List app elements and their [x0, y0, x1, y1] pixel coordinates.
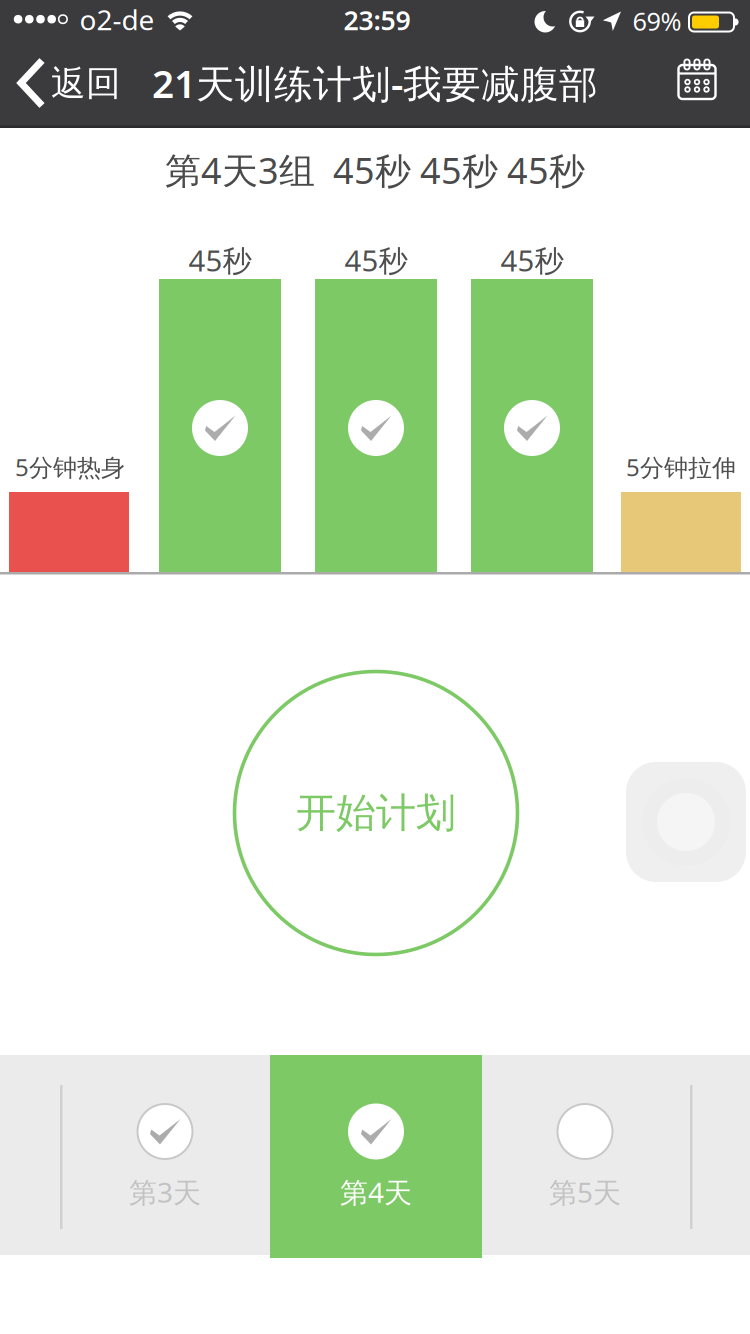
staticText: 第4天3组 45秒 45秒 45秒: [165, 146, 585, 194]
staticText: 开始计划: [296, 788, 456, 837]
button[interactable]: 第5天: [480, 1055, 690, 1255]
staticText: o2-de: [79, 1, 154, 38]
staticText: 第5天: [549, 1173, 621, 1211]
button[interactable]: 返回: [14, 55, 140, 111]
button[interactable]: 第3天: [60, 1055, 270, 1255]
staticText: 第4天: [340, 1173, 412, 1211]
staticText: 21天训练计划-我要减腹部: [152, 57, 598, 109]
staticText: 第3天: [129, 1173, 201, 1211]
button[interactable]: Calendar: [676, 60, 720, 104]
staticText: 45秒: [500, 240, 563, 279]
staticText: 返回: [51, 62, 121, 105]
staticText: 45秒: [188, 240, 251, 279]
staticText: 5分钟拉伸: [626, 451, 736, 483]
button[interactable]: 开始计划: [233, 670, 518, 955]
staticText: 45秒: [344, 240, 407, 279]
staticText: 23:59: [343, 2, 410, 38]
button[interactable]: AssistiveTouch: [626, 762, 746, 882]
staticText: 69%: [632, 4, 681, 38]
staticText: 5分钟热身: [15, 451, 125, 483]
button[interactable]: 第4天: [270, 1055, 482, 1258]
